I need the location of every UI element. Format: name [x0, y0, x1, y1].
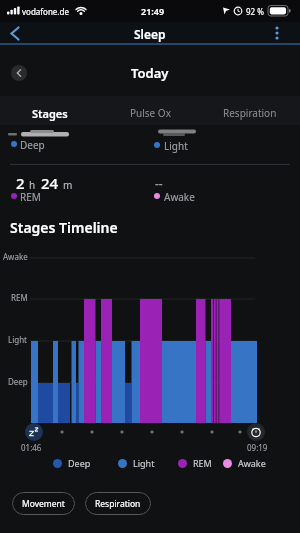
- staticText: 92 %: [246, 6, 264, 17]
- staticText: Respiration: [223, 106, 277, 120]
- staticText: h: [29, 178, 36, 192]
- staticText: Respiration: [95, 498, 141, 510]
- staticText: Deep: [68, 457, 91, 469]
- staticText: Awake: [164, 190, 195, 204]
- button[interactable]: [0, 22, 30, 44]
- button[interactable]: [11, 65, 27, 81]
- staticText: REM: [11, 292, 28, 303]
- button[interactable]: Movement: [12, 492, 75, 515]
- staticText: 21:49: [141, 5, 165, 17]
- button[interactable]: Respiration: [200, 100, 300, 126]
- staticText: Movement: [22, 498, 65, 510]
- staticText: Light: [164, 139, 188, 153]
- button[interactable]: [266, 22, 288, 44]
- staticText: 01:46: [21, 442, 42, 453]
- staticText: Sleep: [134, 26, 166, 42]
- staticText: REM: [193, 457, 212, 469]
- staticText: Pulse Ox: [130, 106, 171, 120]
- staticText: --: [155, 175, 163, 191]
- staticText: 24: [41, 173, 59, 193]
- staticText: m: [63, 178, 73, 192]
- staticText: Awake: [3, 251, 28, 262]
- staticText: 09:19: [247, 442, 268, 453]
- staticText: Deep: [8, 376, 28, 387]
- staticText: Today: [131, 64, 169, 82]
- staticText: 2: [16, 173, 25, 193]
- staticText: Awake: [238, 457, 266, 469]
- staticText: vodafone.de: [22, 6, 69, 17]
- button[interactable]: Pulse Ox: [100, 100, 200, 126]
- button[interactable]: Respiration: [85, 492, 151, 515]
- button[interactable]: Stages: [0, 100, 100, 126]
- staticText: REM: [20, 190, 41, 204]
- staticText: Light: [133, 457, 155, 469]
- staticText: Stages Timeline: [10, 218, 118, 237]
- staticText: Stages: [32, 106, 68, 121]
- staticText: Deep: [20, 138, 45, 152]
- staticText: Light: [8, 334, 28, 345]
